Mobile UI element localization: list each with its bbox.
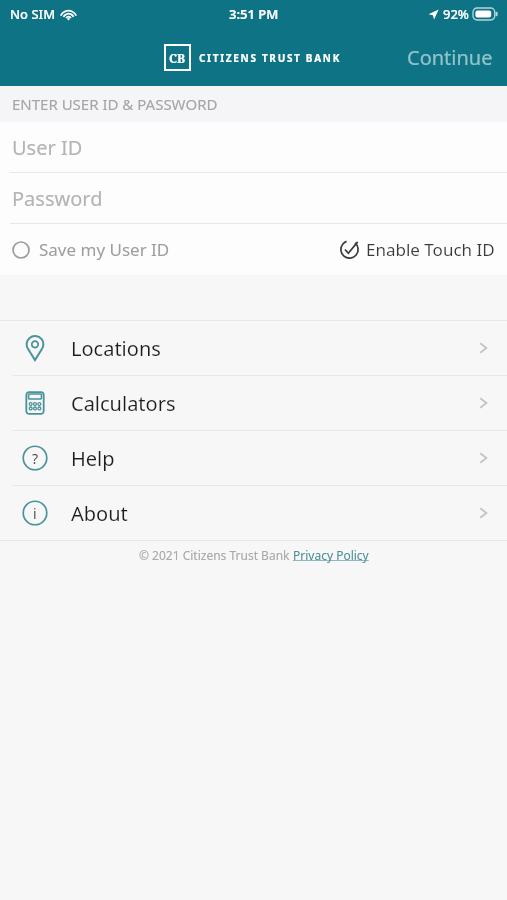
button[interactable]: User ID bbox=[0, 122, 507, 172]
staticText: ? bbox=[32, 449, 39, 468]
button[interactable]: Password bbox=[0, 173, 507, 223]
other: Locations bbox=[21, 334, 49, 362]
staticText: Help bbox=[71, 445, 115, 472]
staticText: Save my User ID bbox=[39, 238, 170, 261]
staticText: Continue bbox=[407, 44, 493, 71]
staticText: Locations bbox=[71, 335, 161, 362]
staticText: CITIZENS TRUST BANK bbox=[199, 51, 342, 65]
button[interactable]: Save my User ID bbox=[0, 231, 180, 268]
staticText: CB bbox=[169, 50, 186, 66]
other: Calculators bbox=[21, 389, 49, 417]
staticText: User ID bbox=[12, 134, 83, 161]
staticText: ENTER USER ID & PASSWORD bbox=[12, 94, 218, 114]
staticText: No SIM bbox=[10, 5, 56, 23]
staticText: Privacy Policy bbox=[293, 547, 369, 563]
button[interactable]: Enable Touch ID bbox=[330, 231, 507, 268]
staticText: Enable Touch ID bbox=[366, 238, 495, 261]
staticText: About bbox=[71, 500, 128, 527]
button[interactable]: Continue bbox=[393, 34, 507, 81]
button[interactable]: Calculators bbox=[0, 376, 507, 430]
button[interactable]: Privacy Policy bbox=[293, 547, 369, 563]
staticText: 92% bbox=[443, 5, 469, 23]
button[interactable]: Locations bbox=[0, 321, 507, 375]
staticText: Calculators bbox=[71, 390, 176, 417]
staticText: 3:51 PM bbox=[229, 5, 279, 23]
button[interactable]: ? bbox=[0, 431, 507, 485]
staticText: © 2021 Citizens Trust Bank bbox=[139, 547, 293, 563]
staticText: i bbox=[33, 504, 37, 523]
button[interactable]: i bbox=[0, 486, 507, 540]
staticText: Password bbox=[12, 185, 103, 212]
